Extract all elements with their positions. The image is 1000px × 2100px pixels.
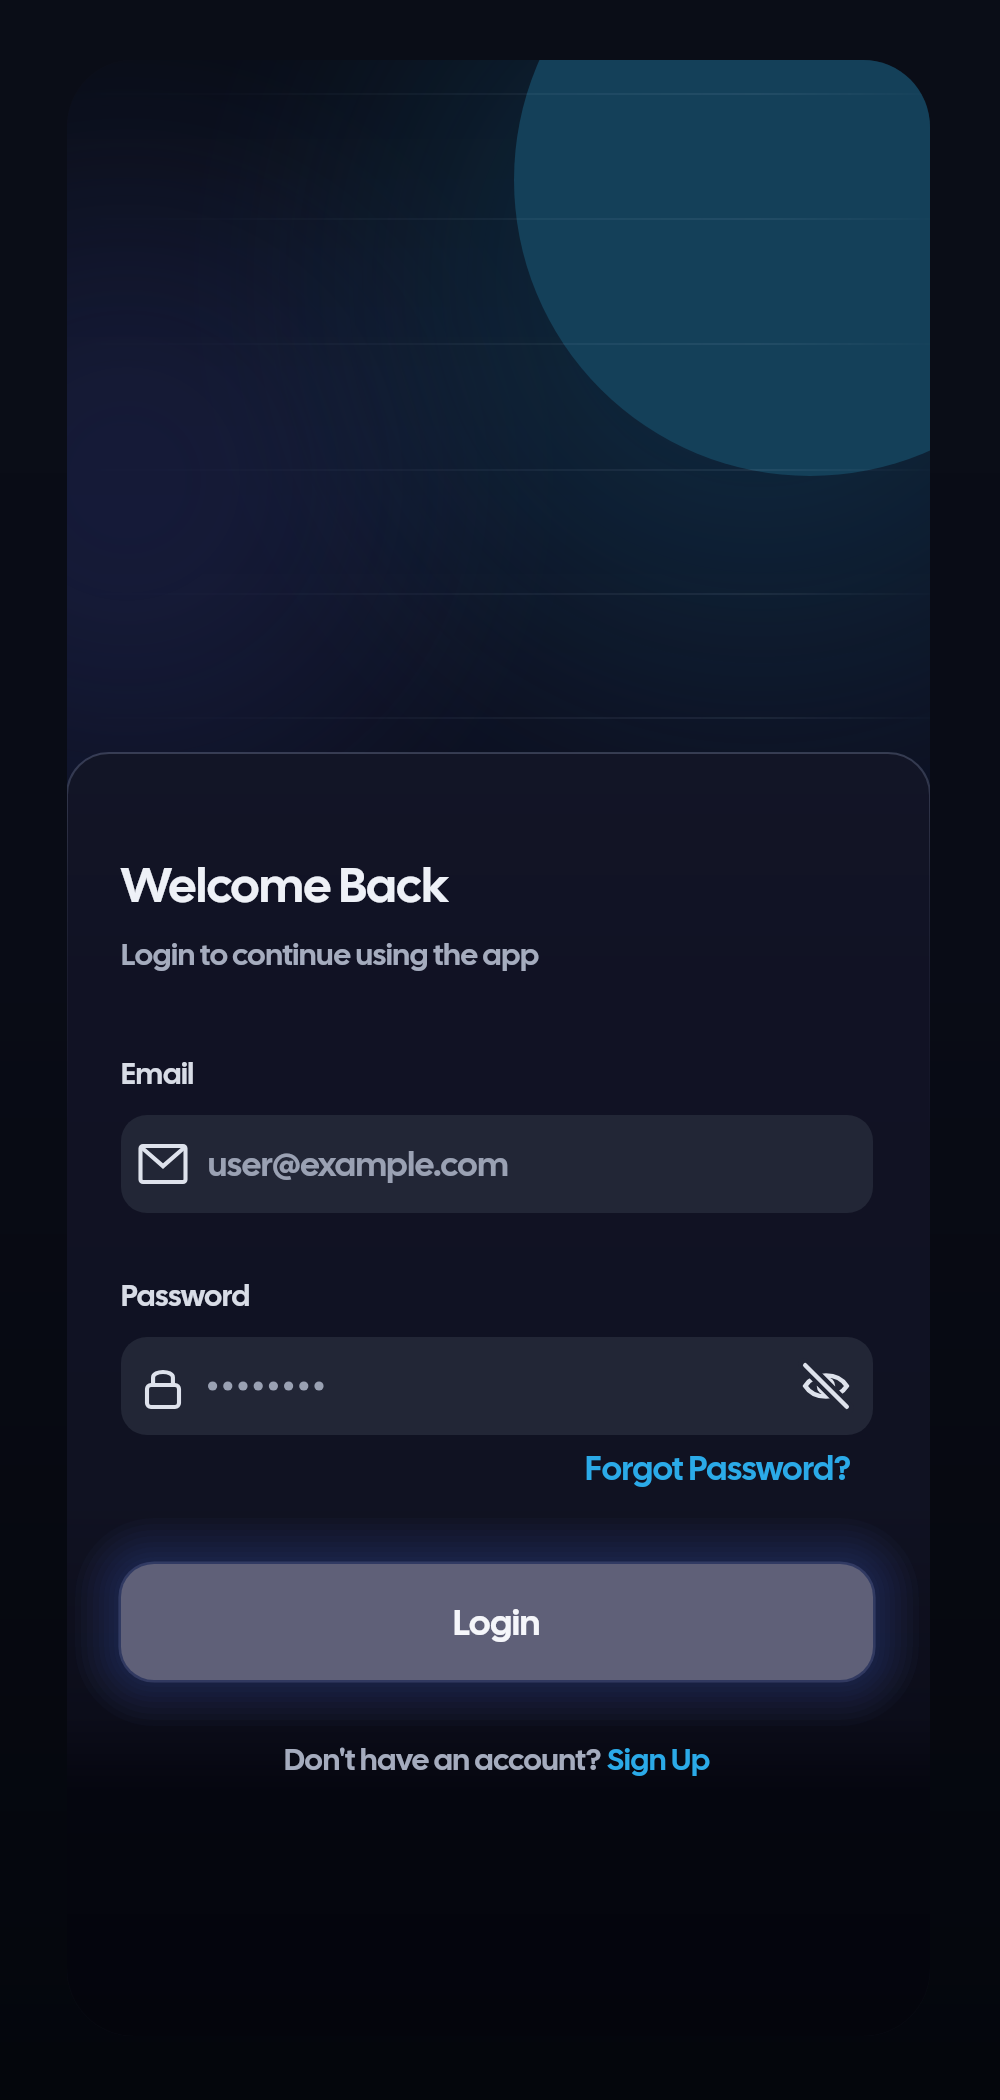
staticText: Sign Up <box>607 1739 710 1779</box>
staticText: Password <box>121 1276 250 1315</box>
button[interactable]: Forgot Password? <box>585 1446 852 1490</box>
button[interactable]: Sign Up <box>607 1739 710 1779</box>
staticText: Login to continue using the app <box>121 934 540 974</box>
button[interactable]: Login <box>121 1564 873 1680</box>
staticText: Login <box>453 1599 541 1646</box>
staticText: user@example.com <box>208 1142 509 1186</box>
button[interactable]: Show password <box>793 1353 859 1419</box>
button[interactable]: Show password <box>121 1337 873 1435</box>
staticText: Email <box>121 1054 194 1093</box>
button[interactable]: user@example.com <box>121 1115 873 1213</box>
staticText: Welcome Back <box>121 853 449 916</box>
staticText: Forgot Password? <box>585 1446 852 1490</box>
staticText: Don't have an account? <box>284 1739 607 1779</box>
